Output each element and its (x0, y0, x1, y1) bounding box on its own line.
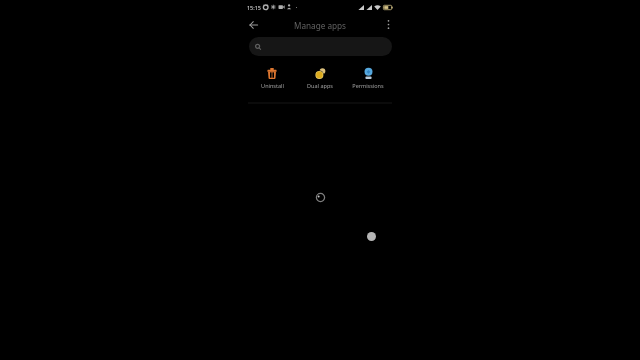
button[interactable]: Dual apps (296, 68, 344, 89)
staticText: 15:15 (247, 4, 261, 11)
button[interactable]: Back (246, 17, 261, 32)
button[interactable]: Uninstall (248, 68, 296, 89)
button[interactable]: More options (381, 17, 396, 32)
staticText: Manage apps (294, 20, 347, 31)
button[interactable]: Permissions (344, 68, 392, 89)
staticText: Uninstall (261, 82, 284, 89)
staticText: Permissions (352, 82, 384, 89)
button[interactable]: Search apps (249, 37, 392, 56)
staticText: Dual apps (307, 82, 333, 89)
